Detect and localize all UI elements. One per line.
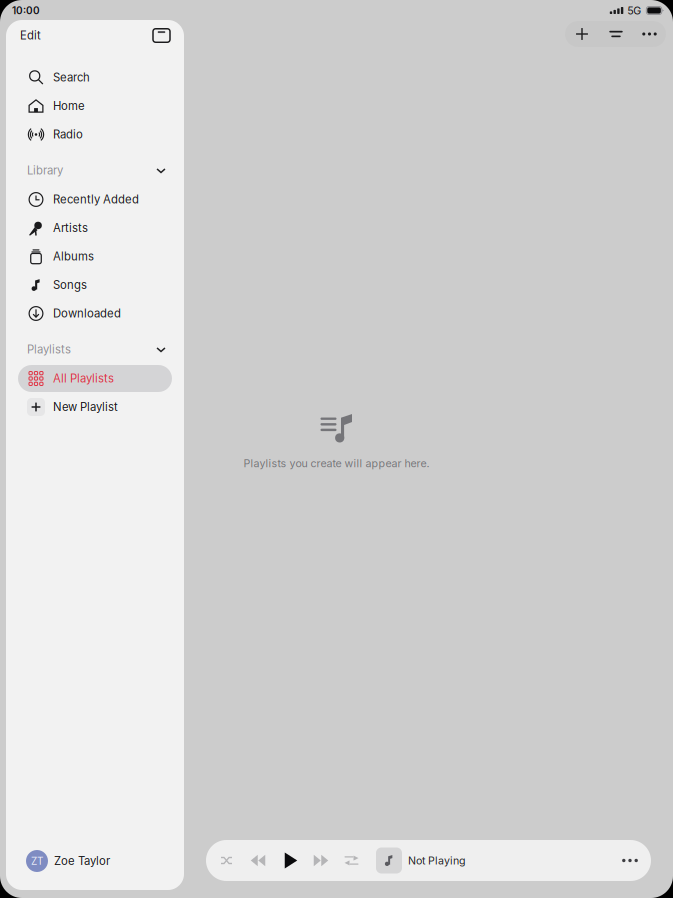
button[interactable]: Songs [18,271,172,298]
button[interactable]: Downloaded [18,300,172,327]
button[interactable]: Shuffle [214,844,239,876]
staticText: Home [53,99,85,113]
button[interactable]: More Options [609,840,651,881]
button[interactable]: Radio [18,121,172,148]
staticText: New Playlist [53,400,118,414]
button[interactable]: Search [18,64,172,91]
button[interactable]: Repeat [339,844,364,876]
button[interactable]: Home [18,92,172,119]
staticText: Downloaded [53,307,121,320]
staticText: Albums [53,250,94,263]
staticText: Edit [20,29,41,42]
staticText: Not Playing [408,854,466,867]
staticText: 5G [627,4,641,17]
button[interactable]: Hide Sidebar [148,24,175,47]
staticText: All Playlists [53,372,114,385]
staticText: Artists [53,221,88,235]
button[interactable]: Recently Added [18,186,172,213]
staticText: Library [27,164,63,177]
button[interactable]: Add [565,21,599,47]
staticText: Playlists you create will appear here. [243,457,429,470]
button[interactable]: Next [308,844,334,876]
button[interactable]: Collapse Playlists [151,338,171,360]
staticText: Songs [53,278,87,292]
button[interactable]: All Playlists [18,365,172,392]
staticText: ZT [31,855,43,867]
staticText: Recently Added [53,193,139,206]
button[interactable]: Play [278,844,304,876]
button[interactable]: Edit [15,24,46,47]
button[interactable]: Albums [18,243,172,270]
button[interactable]: Artists [18,214,172,241]
button[interactable]: Sort [599,21,633,47]
staticText: Zoe Taylor [54,854,110,868]
button[interactable]: ZT [6,832,184,890]
button[interactable]: More [633,21,666,47]
staticText: 10:00 [12,4,40,17]
button[interactable]: Collapse Library [151,159,171,181]
staticText: Playlists [27,343,71,356]
staticText: Radio [53,128,83,141]
button[interactable]: Previous [245,844,271,876]
button[interactable]: New Playlist [18,393,172,420]
staticText: Search [53,71,90,84]
